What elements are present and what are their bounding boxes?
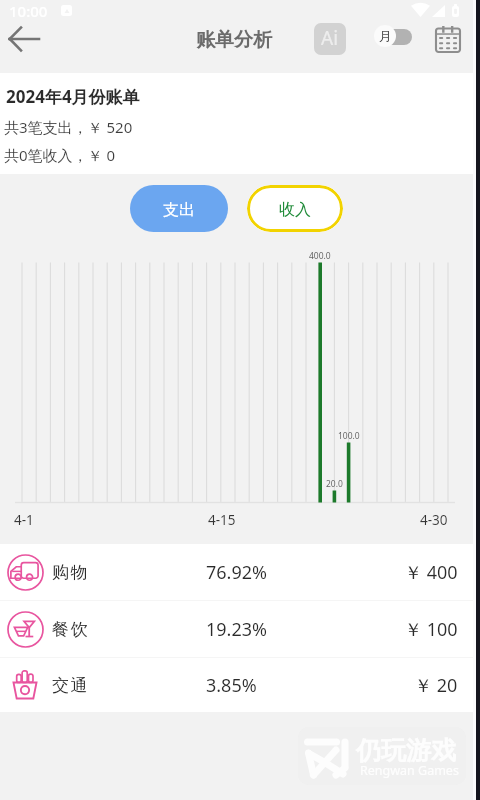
staticText: 购物 — [52, 562, 90, 583]
staticText: 餐饮 — [52, 619, 90, 640]
staticText: 4-30 — [420, 511, 448, 529]
staticText: 共3笔支出，￥ 520 — [4, 117, 133, 137]
staticText: 交通 — [52, 675, 90, 696]
staticText: Ai — [321, 25, 339, 51]
staticText: ￥ 100 — [404, 617, 458, 642]
staticText: 3.85% — [206, 673, 257, 698]
staticText: ￥ 20 — [414, 673, 458, 698]
staticText: 仍玩游戏 — [356, 735, 456, 766]
staticText: 100.0 — [338, 430, 360, 442]
staticText: 19.23% — [206, 617, 267, 642]
staticText: Rengwan Games — [360, 762, 459, 779]
staticText: 账单分析 — [196, 28, 272, 52]
button[interactable]: 购物 — [0, 544, 480, 600]
staticText: 月 — [379, 28, 392, 44]
button[interactable]: 餐饮 — [0, 601, 480, 657]
staticText: 2024年4月份账单 — [6, 85, 140, 108]
staticText: 20.0 — [326, 478, 343, 490]
staticText: 支出 — [163, 200, 195, 220]
button[interactable]: Switch to month view — [374, 25, 413, 48]
staticText: 4-1 — [14, 511, 34, 529]
button[interactable]: AI assistant — [314, 23, 346, 55]
button[interactable]: 交通 — [0, 658, 480, 712]
button[interactable]: 支出 — [130, 185, 228, 232]
staticText: 76.92% — [206, 560, 267, 585]
staticText: 400.0 — [309, 250, 331, 262]
staticText: 收入 — [279, 200, 311, 220]
staticText: ￥ 400 — [404, 560, 458, 585]
button[interactable]: 收入 — [247, 185, 343, 232]
button[interactable]: Back — [0, 15, 48, 63]
staticText: 10:00 — [9, 1, 48, 21]
button[interactable]: Select date — [433, 24, 463, 54]
staticText: 共0笔收入，￥ 0 — [4, 145, 116, 165]
staticText: 4-15 — [208, 511, 236, 529]
